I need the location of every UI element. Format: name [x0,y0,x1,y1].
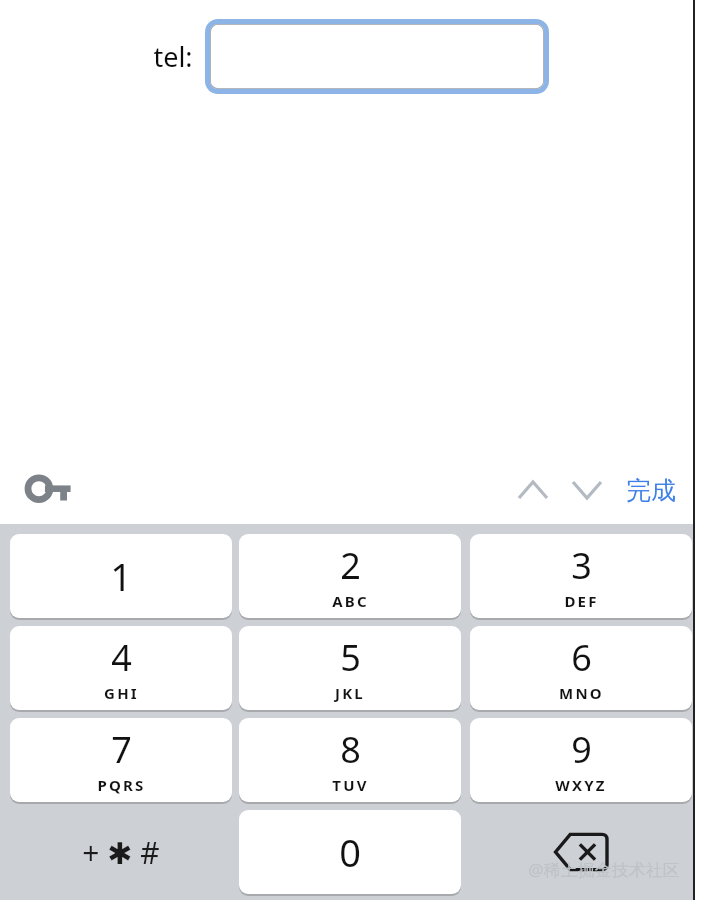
staticText: 8 [340,725,361,774]
staticText: 0 [339,826,361,878]
staticText: MNO [559,683,604,703]
staticText: GHI [104,683,139,703]
button[interactable]: 7 [10,718,232,802]
button[interactable]: 6 [470,626,692,710]
staticText: tel: [153,38,193,75]
staticText: JKL [335,683,365,703]
button[interactable] [210,24,544,89]
staticText: 6 [571,633,592,682]
button[interactable]: 1 [10,534,232,618]
button[interactable]: Previous field [508,469,558,511]
button[interactable]: 2 [239,534,461,618]
staticText: 5 [340,633,361,682]
button[interactable]: 0 [239,810,461,894]
staticText: PQRS [97,775,146,795]
staticText: 3 [571,541,592,590]
staticText: 7 [111,725,132,774]
button[interactable]: 9 [470,718,692,802]
staticText: + ✱ # [82,832,160,873]
button[interactable]: 3 [470,534,692,618]
staticText: ABC [332,591,369,611]
staticText: DEF [564,591,599,611]
button[interactable]: Next field [562,469,612,511]
button[interactable]: Passwords [22,469,78,511]
staticText: 完成 [626,475,676,506]
staticText: 9 [571,725,592,774]
button[interactable]: 4 [10,626,232,710]
button[interactable]: 5 [239,626,461,710]
staticText: @稀土掘金技术社区 [528,858,680,881]
staticText: 4 [111,633,132,682]
staticText: WXYZ [555,775,607,795]
staticText: 1 [110,550,132,602]
button[interactable]: 完成 [616,467,686,513]
staticText: TUV [332,775,369,795]
staticText: 2 [340,541,361,590]
button[interactable]: 8 [239,718,461,802]
button[interactable]: + ✱ # [10,810,232,894]
button[interactable]: Delete [470,810,692,894]
